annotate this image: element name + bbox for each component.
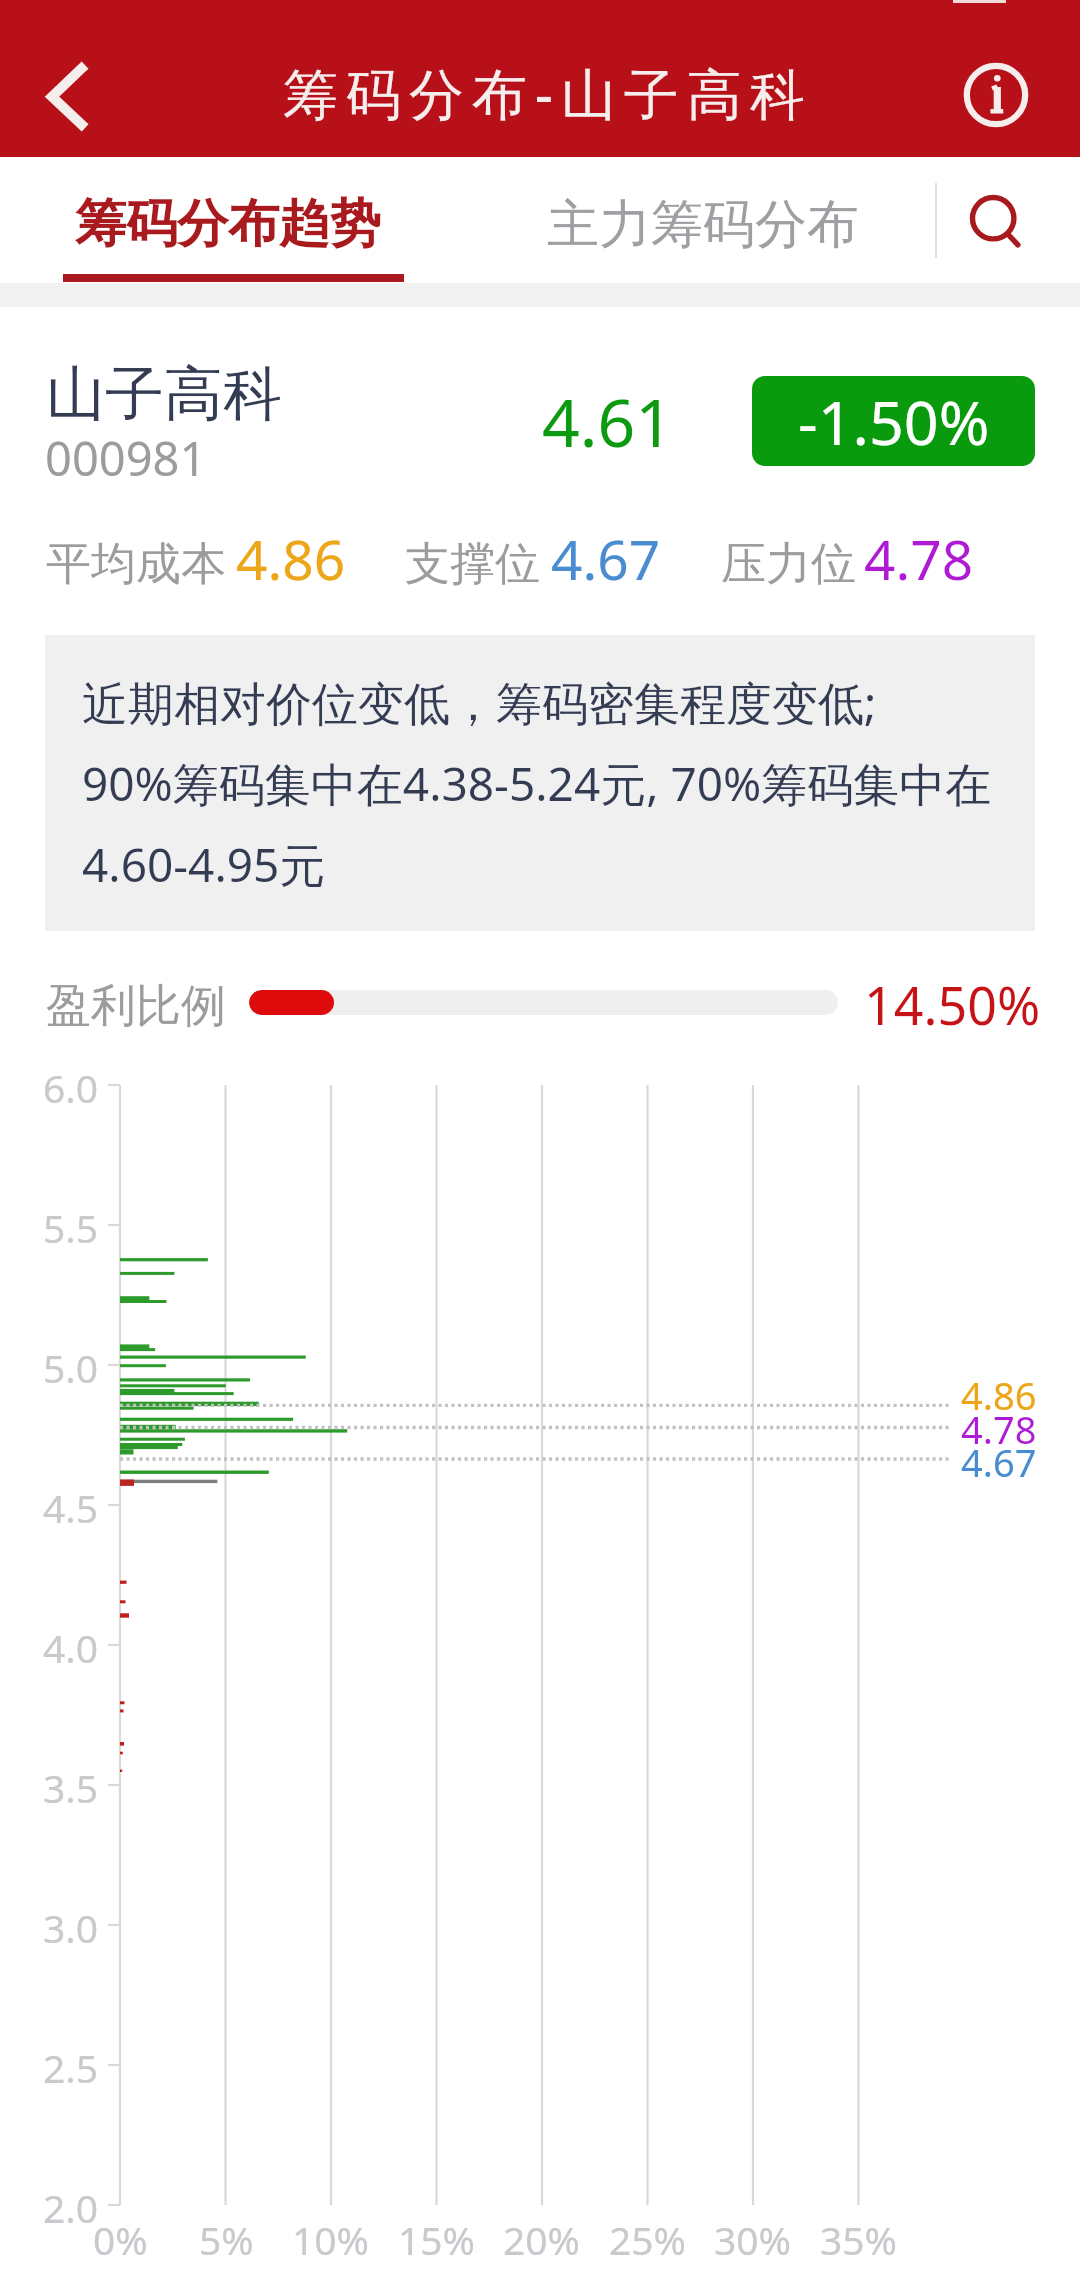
staticText: 2.5: [43, 2041, 99, 2094]
button[interactable]: 主力筹码分布: [543, 172, 863, 284]
staticText: 4.67: [551, 521, 661, 596]
staticText: 6.0: [43, 1061, 99, 1114]
staticText: 35%: [820, 2213, 898, 2266]
staticText: 0%: [93, 2213, 148, 2266]
staticText: 14.50%: [864, 969, 1041, 1040]
staticText: 4.78: [864, 521, 974, 596]
button[interactable]: 筹码分布趋势: [53, 171, 403, 283]
staticText: 5.0: [43, 1341, 99, 1394]
staticText: 25%: [609, 2213, 687, 2266]
staticText: 10%: [292, 2213, 370, 2266]
staticText: 4.61: [542, 376, 673, 466]
staticText: 压力位: [721, 536, 856, 593]
staticText: 5%: [199, 2213, 254, 2266]
staticText: -1.50%: [798, 380, 990, 463]
staticText: 3.5: [43, 1761, 99, 1814]
button[interactable]: Search: [955, 185, 1035, 265]
staticText: 4.5: [43, 1481, 99, 1534]
button[interactable]: Back: [10, 36, 130, 156]
staticText: 4.0: [43, 1621, 99, 1674]
staticText: 主力筹码分布: [547, 192, 859, 258]
staticText: 平均成本: [46, 536, 226, 593]
staticText: 4.78: [961, 1403, 1037, 1455]
staticText: 30%: [714, 2213, 792, 2266]
staticText: 筹码分布趋势: [75, 192, 381, 256]
staticText: 山子高科: [46, 357, 282, 431]
staticText: 2.0: [43, 2181, 99, 2234]
staticText: 盈利比例: [46, 978, 226, 1035]
staticText: 000981: [45, 426, 207, 490]
staticText: 筹码分布-山子高科: [283, 55, 813, 130]
staticText: 3.0: [43, 1901, 99, 1954]
staticText: 近期相对价位变低，筹码密集程度变低; 90%筹码集中在4.38-5.24元, 7…: [82, 671, 992, 896]
staticText: 20%: [503, 2213, 581, 2266]
staticText: 支撑位: [405, 536, 540, 593]
staticText: 15%: [398, 2213, 476, 2266]
button[interactable]: Info: [956, 55, 1036, 135]
staticText: 5.5: [43, 1201, 99, 1254]
staticText: 4.86: [961, 1369, 1037, 1421]
button[interactable]: -1.50%: [752, 376, 1035, 466]
staticText: 4.67: [961, 1436, 1037, 1488]
staticText: 4.86: [236, 521, 346, 596]
